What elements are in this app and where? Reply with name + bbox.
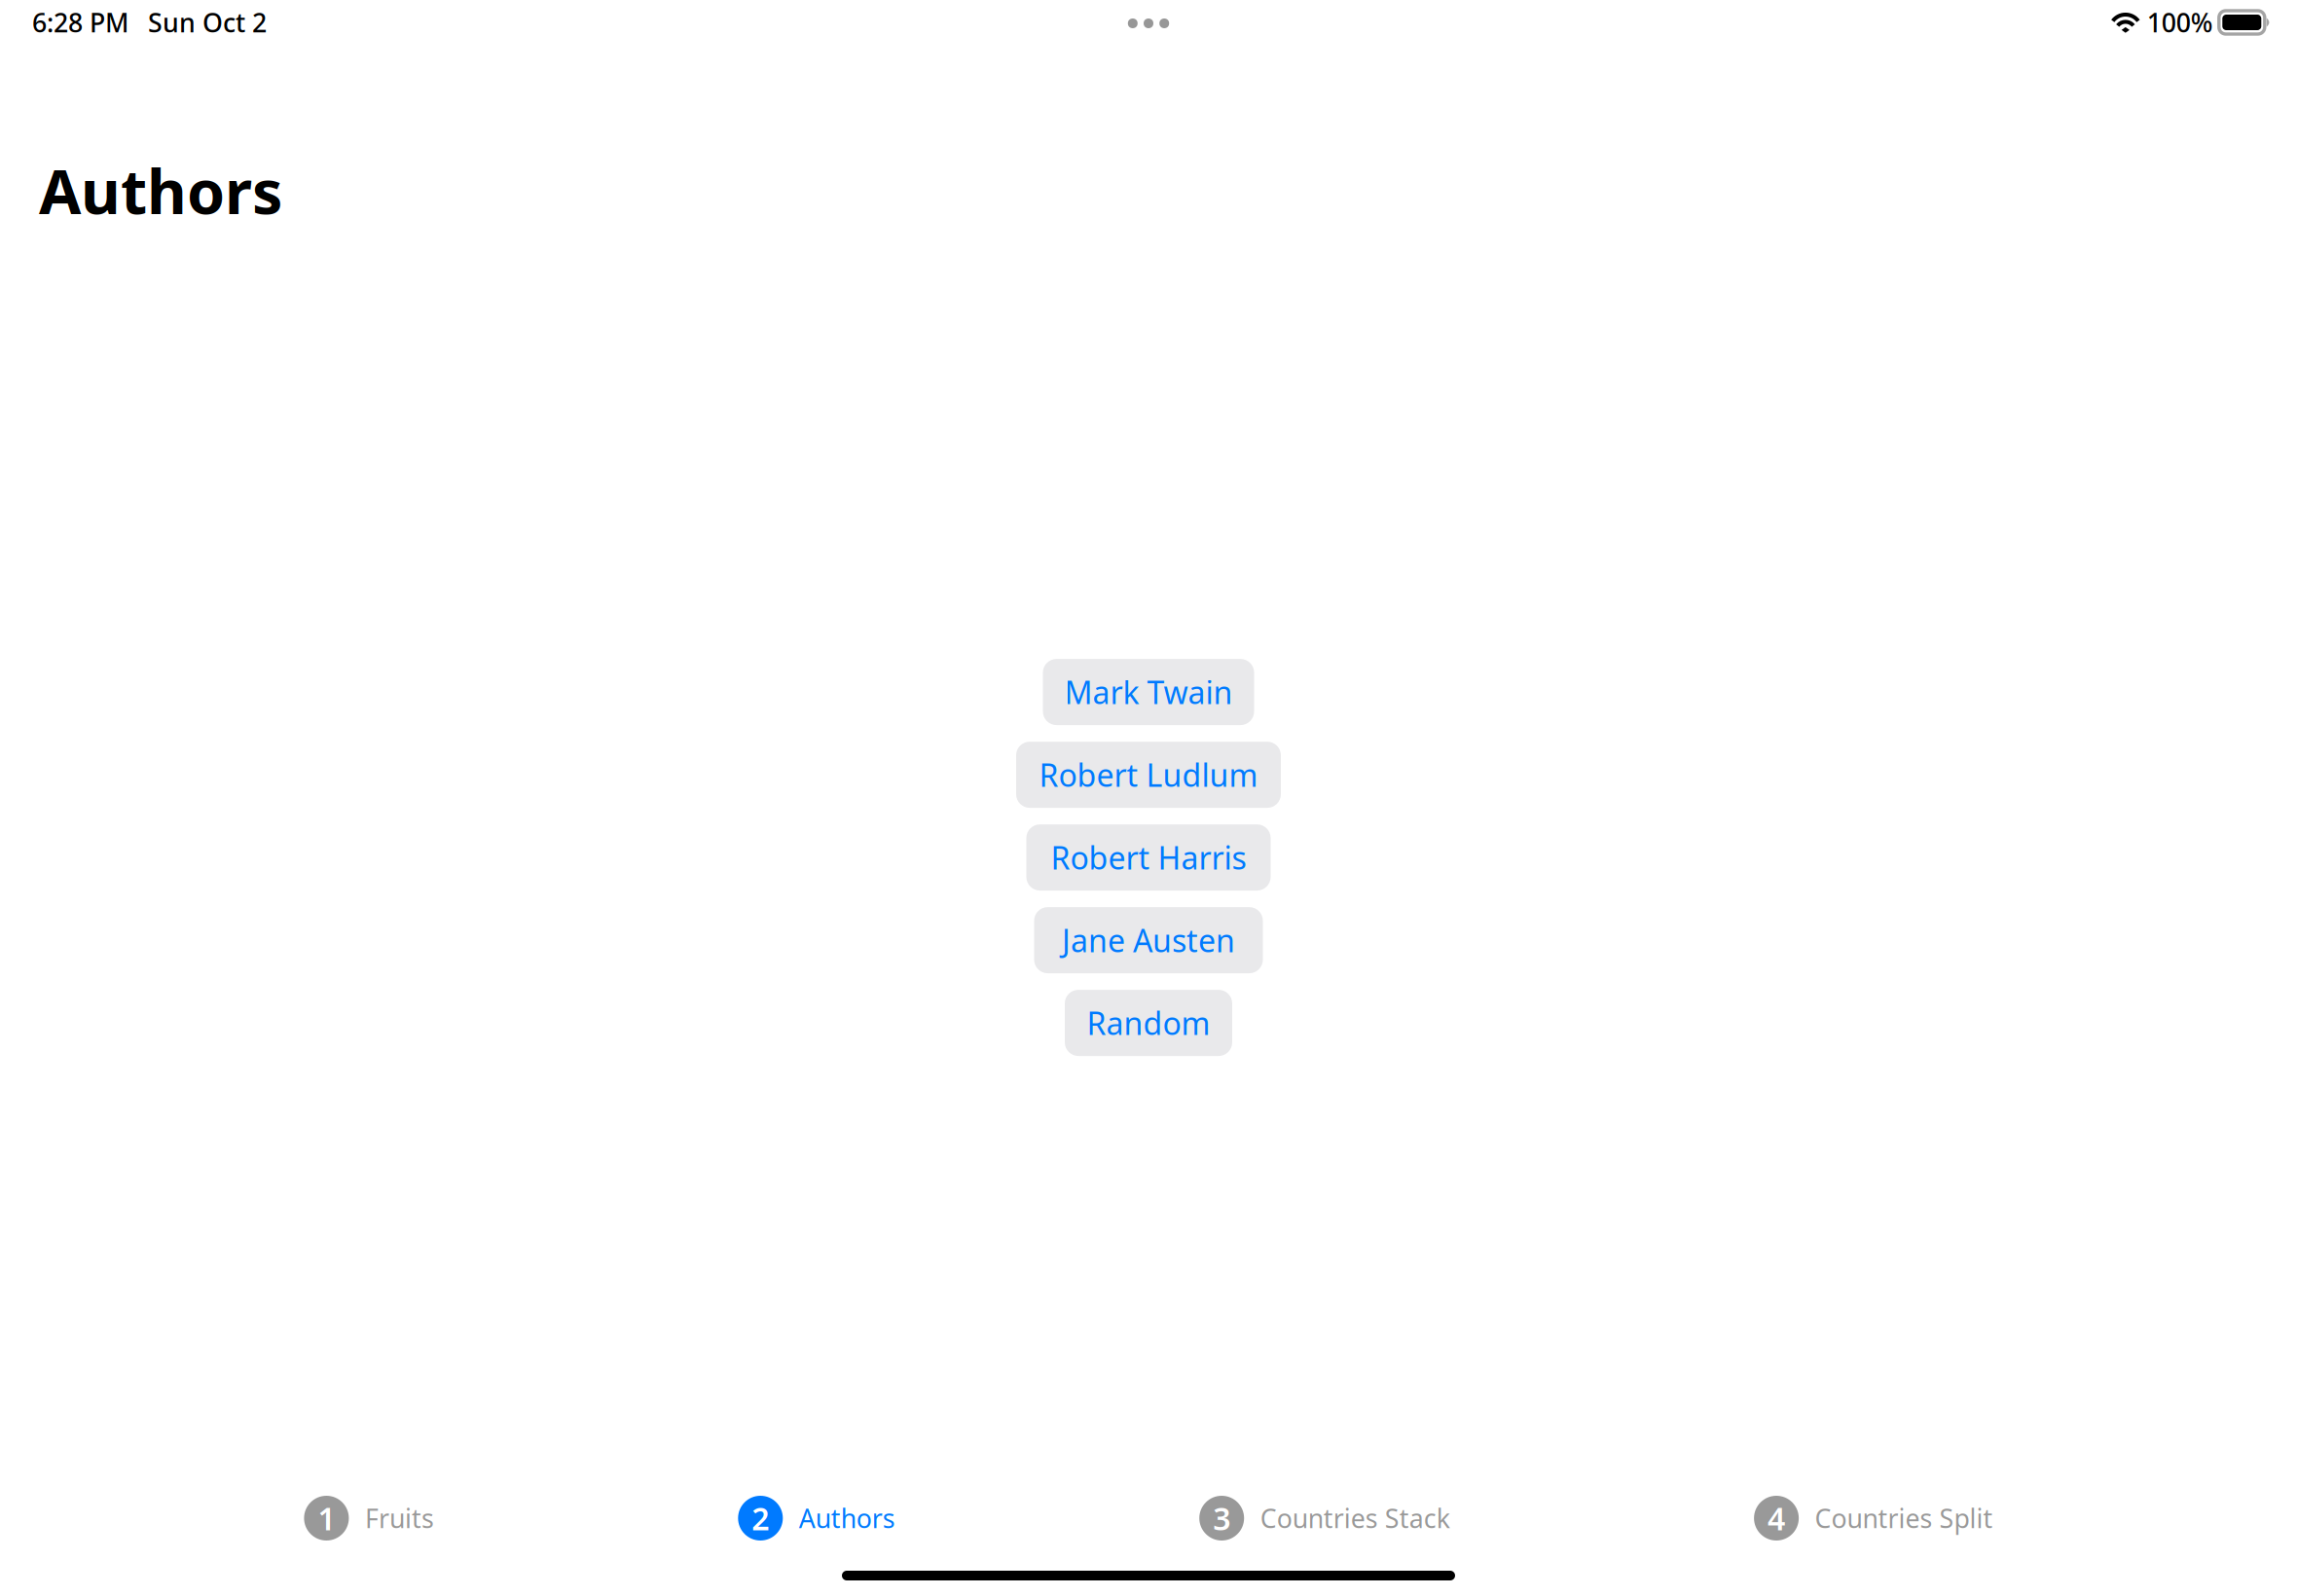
button[interactable]: Jane Austen bbox=[1034, 907, 1263, 973]
staticText: Authors bbox=[39, 150, 282, 231]
staticText: Countries Stack bbox=[1260, 1501, 1450, 1535]
button[interactable]: 4 bbox=[1754, 1496, 1993, 1541]
staticText: 4 bbox=[1768, 1498, 1785, 1539]
button[interactable]: Robert Ludlum bbox=[1016, 742, 1281, 808]
staticText: Robert Harris bbox=[1051, 837, 1246, 878]
staticText: Countries Split bbox=[1815, 1501, 1993, 1535]
staticText: 100% bbox=[2147, 5, 2213, 40]
staticText: Mark Twain bbox=[1064, 671, 1233, 713]
button[interactable]: 2 bbox=[738, 1496, 895, 1541]
button[interactable]: Robert Harris bbox=[1026, 824, 1271, 891]
staticText: Fruits bbox=[365, 1501, 434, 1535]
staticText: 3 bbox=[1213, 1498, 1230, 1539]
button[interactable]: 3 bbox=[1199, 1496, 1450, 1541]
staticText: 1 bbox=[318, 1498, 335, 1539]
button[interactable]: Mark Twain bbox=[1043, 659, 1254, 725]
button[interactable]: 1 bbox=[304, 1496, 434, 1541]
staticText: Jane Austen bbox=[1062, 920, 1235, 961]
staticText: Robert Ludlum bbox=[1039, 754, 1258, 795]
staticText: 2 bbox=[752, 1498, 769, 1539]
button[interactable]: Random bbox=[1065, 990, 1232, 1056]
staticText: Random bbox=[1087, 1002, 1210, 1044]
staticText: Authors bbox=[799, 1501, 895, 1535]
staticText: Sun Oct 2 bbox=[148, 5, 267, 40]
staticText: 6:28 PM bbox=[32, 5, 128, 40]
